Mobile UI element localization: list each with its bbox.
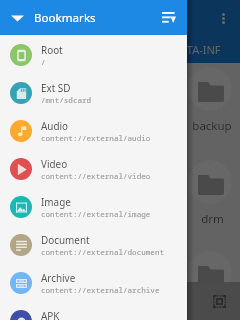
button[interactable]: Document (0, 226, 187, 264)
button[interactable]: app (188, 251, 232, 295)
button[interactable]: Select all (205, 287, 233, 315)
staticText: content://external/audio (41, 133, 151, 143)
button[interactable]: backup (188, 67, 232, 111)
staticText: res (144, 211, 161, 227)
staticText: Audio (41, 119, 69, 132)
staticText: content://external/image (41, 209, 151, 219)
staticText: Image (41, 195, 71, 208)
staticText: drm (201, 211, 224, 227)
staticText: Root (41, 43, 63, 56)
staticText: app (202, 302, 223, 318)
button[interactable]: More options (210, 5, 237, 31)
staticText: /sdcard/META-INF (128, 42, 221, 57)
staticText: Document (41, 233, 90, 246)
staticText: content://external/archive (41, 285, 160, 295)
staticText: Video (41, 157, 68, 170)
button[interactable]: res (128, 160, 172, 204)
staticText: Archive (41, 271, 76, 284)
staticText: backup (192, 118, 232, 134)
staticText: content://external/document (41, 247, 165, 257)
button[interactable]: Root (0, 36, 187, 74)
button[interactable]: Ext SD (0, 74, 187, 112)
button[interactable]: data (128, 251, 172, 295)
staticText: Ext SD (41, 81, 71, 94)
button[interactable]: Expand bookmarks (0, 0, 34, 35)
staticText: Bookmarks (34, 10, 96, 26)
button[interactable]: Archive (0, 264, 187, 302)
staticText: APK (41, 309, 60, 320)
button[interactable]: drm (188, 160, 232, 204)
button[interactable]: Image (0, 188, 187, 226)
button[interactable]: APK (0, 302, 187, 320)
staticText: content://external/video (41, 171, 151, 181)
button[interactable]: New folder (160, 287, 188, 315)
staticText: / (41, 57, 46, 67)
button[interactable]: Audio (0, 112, 187, 150)
staticText: /mnt/sdcard (41, 95, 92, 105)
button[interactable]: Sort (151, 0, 187, 35)
button[interactable]: Video (0, 150, 187, 188)
